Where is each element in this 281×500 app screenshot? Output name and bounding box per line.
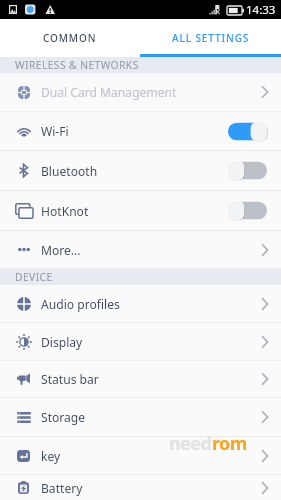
button[interactable]: On — [228, 122, 267, 141]
staticText: need — [169, 431, 212, 456]
staticText: Display — [41, 334, 83, 350]
staticText: More... — [41, 242, 81, 258]
button[interactable]: More... — [0, 231, 281, 268]
staticText: Status bar — [41, 371, 99, 387]
button[interactable]: Battery — [0, 475, 281, 500]
button[interactable]: Status bar — [0, 361, 281, 397]
staticText: COMMON — [43, 31, 97, 45]
button[interactable]: HotKnot — [0, 191, 281, 230]
button[interactable]: COMMON — [0, 19, 140, 57]
button[interactable]: key — [0, 437, 281, 474]
button[interactable]: Bluetooth — [0, 151, 281, 190]
staticText: Wi-Fi — [41, 123, 69, 139]
staticText: Dual Card Management — [41, 84, 177, 100]
button[interactable]: Dual Card Management — [0, 73, 281, 111]
staticText: Bluetooth — [41, 163, 98, 179]
staticText: DEVICE — [15, 270, 53, 284]
staticText: WIRELESS & NETWORKS — [15, 58, 139, 72]
staticText: Storage — [41, 409, 86, 425]
staticText: rom — [212, 431, 247, 456]
button[interactable]: Display — [0, 323, 281, 360]
button[interactable]: Wi-Fi — [0, 112, 281, 150]
staticText: key — [41, 448, 61, 464]
button[interactable]: Storage — [0, 398, 281, 436]
button[interactable]: Audio profiles — [0, 285, 281, 322]
staticText: ALL SETTINGS — [172, 31, 250, 45]
button[interactable]: ALL SETTINGS — [140, 19, 281, 57]
staticText: Battery — [41, 480, 83, 496]
staticText: Audio profiles — [41, 296, 120, 312]
button[interactable]: Off — [228, 161, 267, 180]
staticText: 14:33 — [246, 2, 276, 18]
staticText: HotKnot — [41, 203, 89, 219]
button[interactable]: Off — [228, 201, 267, 220]
